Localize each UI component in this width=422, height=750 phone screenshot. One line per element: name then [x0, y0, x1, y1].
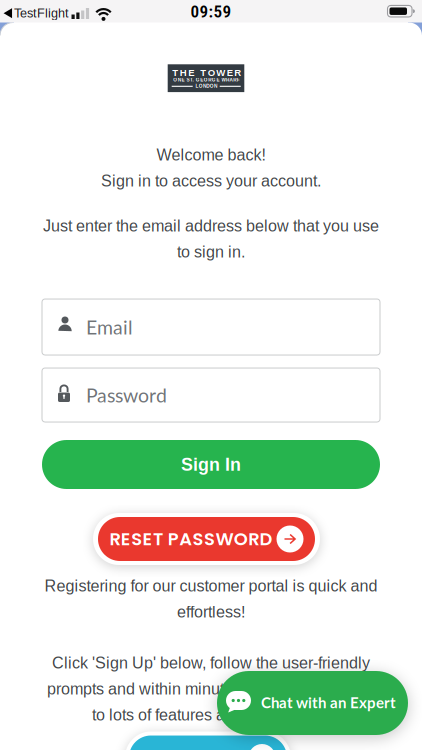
- staticText: Password: [86, 383, 167, 407]
- button[interactable]: RESET PASSWORD: [93, 512, 320, 566]
- staticText: Registering for our customer portal is q…: [44, 577, 377, 595]
- staticText: RESET PASSWORD: [109, 526, 273, 551]
- staticText: ONE ST. GEORGE WHARF: [173, 77, 240, 82]
- staticText: LONDON: [195, 83, 217, 89]
- staticText: Chat with an Expert: [261, 693, 396, 712]
- staticText: effortless!: [177, 603, 245, 621]
- staticText: to lots of features and information!: [92, 706, 330, 724]
- staticText: 09:59: [190, 1, 231, 22]
- staticText: Sign in to access your account.: [101, 172, 321, 190]
- staticText: Sign In: [181, 454, 241, 474]
- button[interactable]: Sign In: [42, 440, 380, 489]
- button[interactable]: Chat with an Expert: [217, 671, 408, 735]
- staticText: to sign in.: [177, 243, 245, 261]
- staticText: prompts and within minutes you'll have a…: [47, 680, 375, 698]
- button[interactable]: Back to TestFlight: [0, 0, 72, 22]
- staticText: Just enter the email address below that …: [43, 217, 379, 235]
- staticText: THE TOWER: [172, 67, 241, 78]
- staticText: TestFlight: [14, 6, 69, 20]
- staticText: Welcome back!: [156, 146, 265, 164]
- button[interactable]: SIGN UP: [125, 731, 291, 750]
- staticText: Email: [86, 315, 133, 339]
- staticText: Click 'Sign Up' below, follow the user-f…: [52, 654, 370, 672]
